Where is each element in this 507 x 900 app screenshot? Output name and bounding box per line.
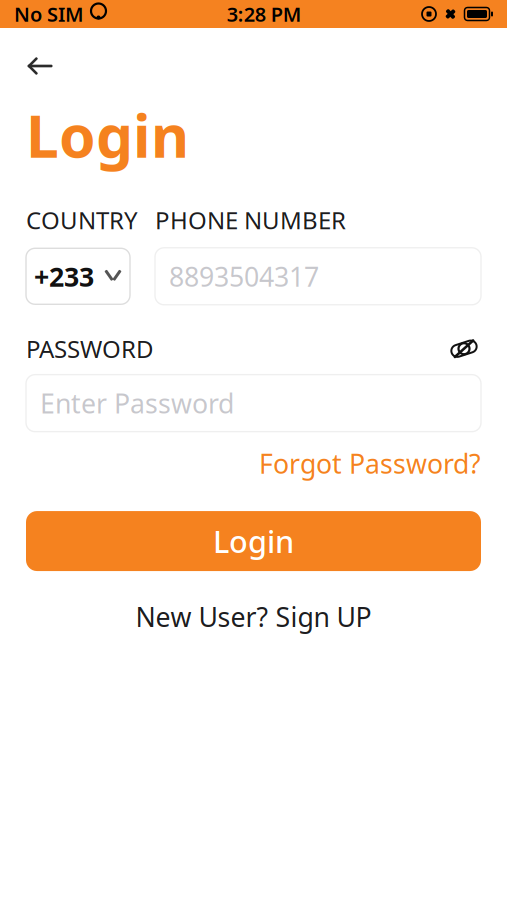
staticText: New User? Sign UP <box>135 599 371 634</box>
staticText: Enter Password <box>40 385 234 421</box>
staticText: 8893504317 <box>169 259 319 294</box>
staticText: PASSWORD <box>26 333 154 365</box>
button[interactable]: New User? Sign UP <box>135 599 371 634</box>
button[interactable]: +233 <box>26 248 130 304</box>
staticText: No SIM <box>14 1 84 27</box>
staticText: Login <box>26 96 189 174</box>
button[interactable]: Login <box>26 511 481 571</box>
staticText: +233 <box>34 259 94 294</box>
staticText: PHONE NUMBER <box>155 204 346 236</box>
staticText: COUNTRY <box>26 204 138 236</box>
staticText: 3:28 PM <box>227 1 302 27</box>
button[interactable]: Show password <box>447 336 481 362</box>
button[interactable]: 8893504317 <box>155 248 481 305</box>
staticText: Forgot Password? <box>259 446 481 481</box>
button[interactable]: Forgot Password? <box>259 446 481 481</box>
staticText: Login <box>213 521 294 561</box>
button[interactable]: Enter Password <box>26 375 481 432</box>
button[interactable]: Back <box>16 46 64 86</box>
